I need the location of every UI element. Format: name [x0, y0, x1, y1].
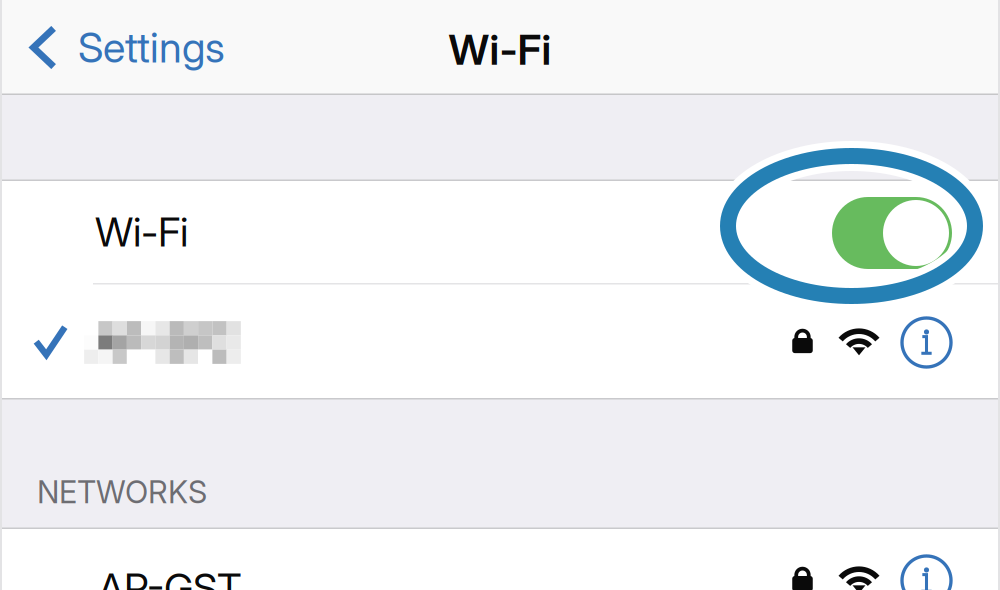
button[interactable]: Wi-Fi	[0, 0, 1000, 590]
staticText: Wi-Fi	[448, 25, 551, 75]
staticText: Settings	[78, 22, 225, 72]
button[interactable]: Settings	[0, 0, 1000, 590]
staticText: NETWORKS	[37, 473, 207, 510]
staticText: AP-GST	[98, 564, 242, 590]
button[interactable]: AP-GST	[0, 0, 1000, 590]
button[interactable]: Network information	[0, 0, 1000, 590]
button[interactable]: Connected network	[0, 0, 1000, 590]
staticText: Wi-Fi	[95, 208, 188, 256]
button[interactable]: Network information	[0, 0, 1000, 590]
